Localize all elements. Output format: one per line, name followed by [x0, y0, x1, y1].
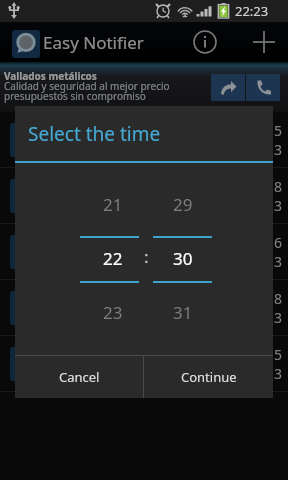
staticText: cada dia: [53, 366, 97, 381]
button[interactable]: Recordatorio: [0, 112, 288, 168]
button[interactable]: Recordatorio: [0, 168, 288, 224]
button[interactable]: Recordatorio: [0, 280, 288, 336]
button[interactable]: 29: [153, 190, 212, 218]
staticText: presupuestos sin compromiso: [4, 89, 146, 103]
staticText: 5: [274, 121, 283, 140]
staticText: 3: [274, 364, 283, 383]
staticText: Continue: [181, 368, 237, 386]
button[interactable]: Add: [242, 22, 286, 62]
staticText: 8: [274, 289, 283, 308]
staticText: Recordatorio: [53, 123, 139, 142]
button[interactable]: Call: [246, 74, 280, 101]
staticText: 5: [274, 345, 283, 364]
staticText: 22: [103, 247, 123, 270]
staticText: :: [144, 245, 149, 268]
staticText: 30: [173, 247, 193, 270]
button[interactable]: Cancel: [15, 356, 143, 398]
button[interactable]: Recordatorio: [0, 224, 288, 280]
staticText: 3: [274, 196, 283, 215]
staticText: Cancel: [59, 368, 100, 386]
button[interactable]: 23: [80, 298, 139, 326]
staticText: 3: [274, 252, 283, 271]
staticText: 3: [274, 140, 283, 159]
staticText: Recordatorio: [53, 235, 139, 254]
staticText: Vallados metálicos: [4, 69, 97, 83]
staticText: 31: [173, 301, 193, 324]
staticText: 8: [274, 177, 283, 196]
staticText: 23: [103, 301, 123, 324]
button[interactable]: Share: [211, 74, 245, 101]
staticText: 3: [274, 308, 283, 327]
button[interactable]: Info: [184, 22, 226, 62]
staticText: Recordatorio: [53, 347, 139, 366]
staticText: 6: [274, 233, 283, 252]
staticText: 22:23: [235, 2, 269, 20]
staticText: 29: [173, 193, 193, 216]
button[interactable]: Continue: [144, 356, 273, 398]
staticText: Calidad y seguridad al mejor precio: [4, 79, 170, 93]
staticText: Select the time: [28, 121, 161, 147]
staticText: Recordatorio: [53, 291, 139, 310]
button[interactable]: 21: [80, 190, 139, 218]
staticText: Easy Notifier: [43, 31, 144, 54]
button[interactable]: Vallados metálicos: [0, 62, 288, 112]
staticText: 21: [103, 193, 123, 216]
button[interactable]: Recordatorio: [0, 336, 288, 392]
button[interactable]: 31: [153, 298, 212, 326]
